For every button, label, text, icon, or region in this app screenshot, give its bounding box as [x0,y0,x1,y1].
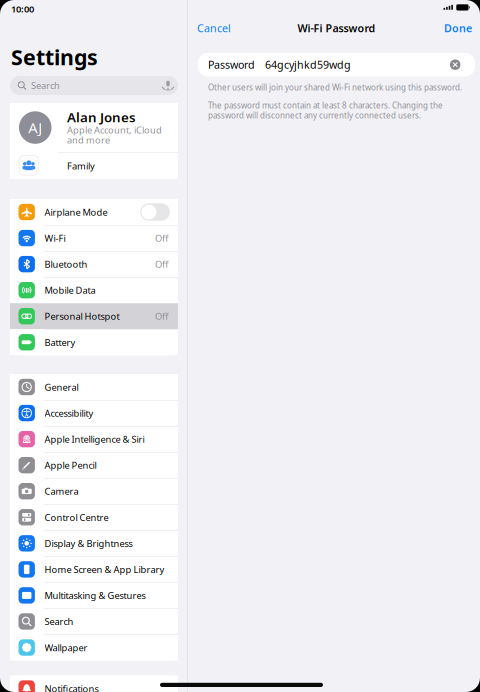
button[interactable]: Control Centre [10,504,178,530]
staticText: Wi-Fi Password [298,21,376,35]
staticText: Other users will join your shared Wi-Fi … [208,82,462,93]
staticText: Bluetooth [44,258,87,270]
button[interactable]: Family [10,153,178,179]
button[interactable]: Apple Intelligence & Siri [10,426,178,452]
staticText: The password must contain at least 8 cha… [208,100,443,111]
staticText: Off [155,310,168,322]
staticText: Camera [44,485,78,497]
staticText: Search [44,615,73,628]
staticText: Done [444,21,472,35]
button[interactable]: Search [10,608,178,635]
button[interactable]: Search [10,76,178,95]
button[interactable]: Home Screen & App Library [10,556,178,582]
staticText: Apple Account, iCloud [67,124,162,136]
staticText: password will disconnect any currently c… [208,110,421,121]
staticText: Password [208,58,255,72]
staticText: Wallpaper [44,641,87,654]
button[interactable]: Apple Pencil [10,452,178,478]
staticText: Search [31,79,60,92]
button[interactable]: Airplane Mode [10,199,178,225]
button[interactable]: Done [432,20,473,36]
button[interactable]: Cancel [197,20,243,36]
staticText: Home Screen & App Library [44,563,164,576]
staticText: Multitasking & Gestures [44,589,145,602]
button[interactable]: General [10,374,178,400]
staticText: Apple Intelligence & Siri [44,433,144,445]
staticText: 10:00 [11,3,34,15]
staticText: 64gcyjhkd59wdg [265,58,351,72]
staticText: Alan Jones [67,108,136,126]
staticText: Apple Pencil [44,459,96,471]
staticText: Wi-Fi [44,232,65,244]
staticText: Display & Brightness [44,537,132,549]
staticText: AJ [28,118,42,137]
button[interactable]: Notifications [10,675,178,692]
button[interactable]: Camera [10,478,178,504]
staticText: Control Centre [44,511,108,523]
staticText: Off [155,232,168,244]
staticText: Airplane Mode [44,206,107,218]
button[interactable]: AJ [10,103,178,153]
button[interactable]: Bluetooth [10,251,178,277]
button[interactable]: Battery [10,329,178,355]
staticText: General [44,381,78,393]
staticText: Battery [44,336,75,348]
button[interactable]: Wi-Fi [10,225,178,251]
button[interactable]: Wallpaper [10,634,178,661]
staticText: Personal Hotspot [44,310,119,322]
button[interactable]: Clear text [450,59,460,70]
staticText: and more [67,134,110,146]
staticText: Mobile Data [44,284,95,296]
button[interactable]: Display & Brightness [10,530,178,556]
button[interactable]: Multitasking & Gestures [10,582,178,608]
staticText: Settings [11,43,98,71]
button[interactable]: Personal Hotspot [10,303,178,329]
staticText: Accessibility [44,407,93,419]
button[interactable]: Accessibility [10,400,178,426]
staticText: Off [155,258,168,270]
staticText: Cancel [197,21,231,35]
button[interactable]: Mobile Data [10,277,178,303]
staticText: Family [67,160,95,172]
staticText: Notifications [44,682,98,692]
